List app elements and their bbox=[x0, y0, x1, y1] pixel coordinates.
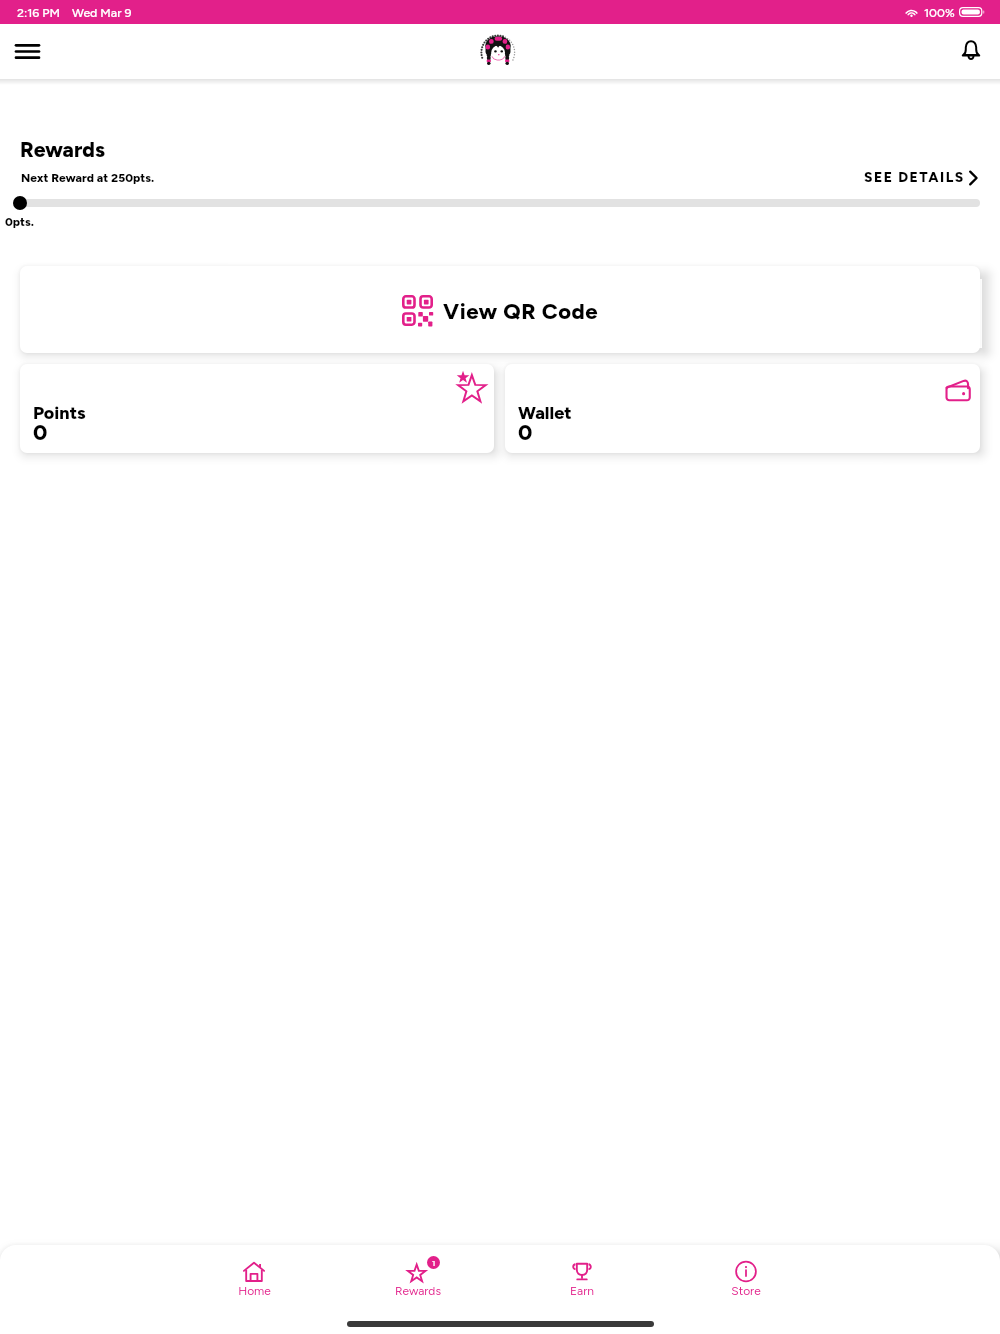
staticText: 1 bbox=[432, 1258, 436, 1268]
staticText: Next Reward at 250pts. bbox=[21, 171, 155, 185]
button[interactable]: 1 bbox=[336, 1261, 500, 1298]
staticText: Wed Mar 9 bbox=[72, 5, 132, 20]
button[interactable]: SEE DETAILS bbox=[864, 167, 979, 188]
staticText: Rewards bbox=[395, 1284, 441, 1298]
staticText: 0 bbox=[33, 419, 48, 445]
staticText: View QR Code bbox=[443, 298, 599, 324]
button[interactable]: Home bbox=[172, 1261, 336, 1298]
button[interactable]: Wallet bbox=[505, 364, 980, 453]
staticText: Points bbox=[33, 402, 86, 424]
button[interactable]: Earn bbox=[500, 1261, 664, 1298]
button[interactable]: Open navigation menu bbox=[0, 24, 54, 79]
staticText: Earn bbox=[570, 1284, 594, 1298]
staticText: 100% bbox=[924, 5, 955, 20]
button[interactable]: View QR Code bbox=[20, 266, 980, 353]
staticText: Wallet bbox=[518, 402, 572, 424]
staticText: 0pts. bbox=[5, 215, 35, 229]
staticText: 2:16 PM bbox=[17, 5, 60, 20]
staticText: 0 bbox=[518, 419, 533, 445]
staticText: Rewards bbox=[20, 137, 105, 162]
staticText: Home bbox=[238, 1284, 271, 1298]
staticText: SEE DETAILS bbox=[864, 169, 965, 186]
staticText: Store bbox=[731, 1284, 761, 1298]
button[interactable]: Points bbox=[20, 364, 494, 453]
button[interactable]: Notifications bbox=[942, 24, 1000, 79]
button[interactable]: Store bbox=[664, 1261, 828, 1298]
